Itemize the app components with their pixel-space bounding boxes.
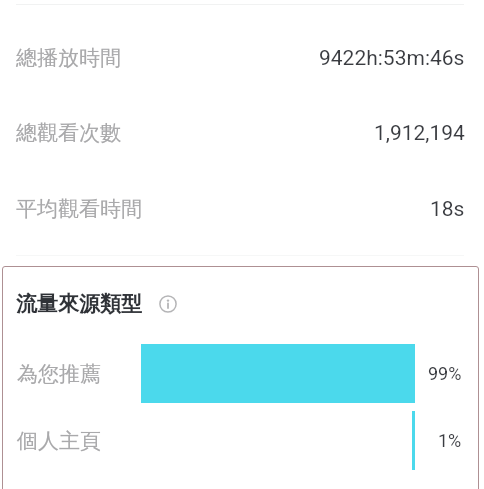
staticText: 為您推薦 [17,361,101,387]
button[interactable]: Info about traffic source types [159,295,177,313]
staticText: 個人主頁 [17,428,101,454]
button[interactable]: 為您推薦 [0,344,484,403]
button[interactable]: 個人主頁 [0,411,484,470]
button[interactable]: 總播放時間 [0,30,484,86]
staticText: 1% [438,430,462,451]
staticText: 總觀看次數 [16,120,121,146]
staticText: 1,912,194 [374,121,465,146]
staticText: 流量來源類型 [16,291,142,317]
staticText: 總播放時間 [16,45,121,71]
staticText: 平均觀看時間 [16,196,142,222]
button[interactable]: 流量來源類型 [16,291,177,317]
staticText: 18s [430,197,465,222]
staticText: 99% [428,363,462,384]
button[interactable]: 平均觀看時間 [0,181,484,237]
button[interactable]: 總觀看次數 [0,105,484,161]
staticText: 9422h:53m:46s [319,46,465,71]
